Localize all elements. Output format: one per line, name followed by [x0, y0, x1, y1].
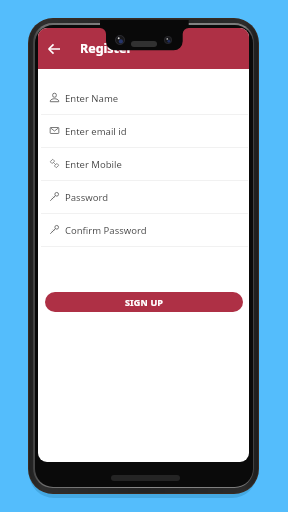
staticText: Password [65, 191, 108, 204]
button[interactable]: Back [40, 35, 68, 63]
button[interactable]: Enter Mobile [38, 148, 249, 181]
button[interactable]: Password [38, 181, 249, 214]
staticText: Enter Mobile [65, 158, 122, 171]
staticText: Register [80, 40, 133, 57]
button[interactable]: SIGN UP [45, 292, 243, 312]
button[interactable]: Enter Name [38, 82, 249, 115]
staticText: Enter email id [65, 125, 127, 138]
staticText: Enter Name [65, 92, 119, 105]
staticText: Confirm Password [65, 224, 147, 237]
button[interactable]: Confirm Password [38, 214, 249, 247]
button[interactable]: Enter email id [38, 115, 249, 148]
staticText: SIGN UP [125, 296, 164, 308]
